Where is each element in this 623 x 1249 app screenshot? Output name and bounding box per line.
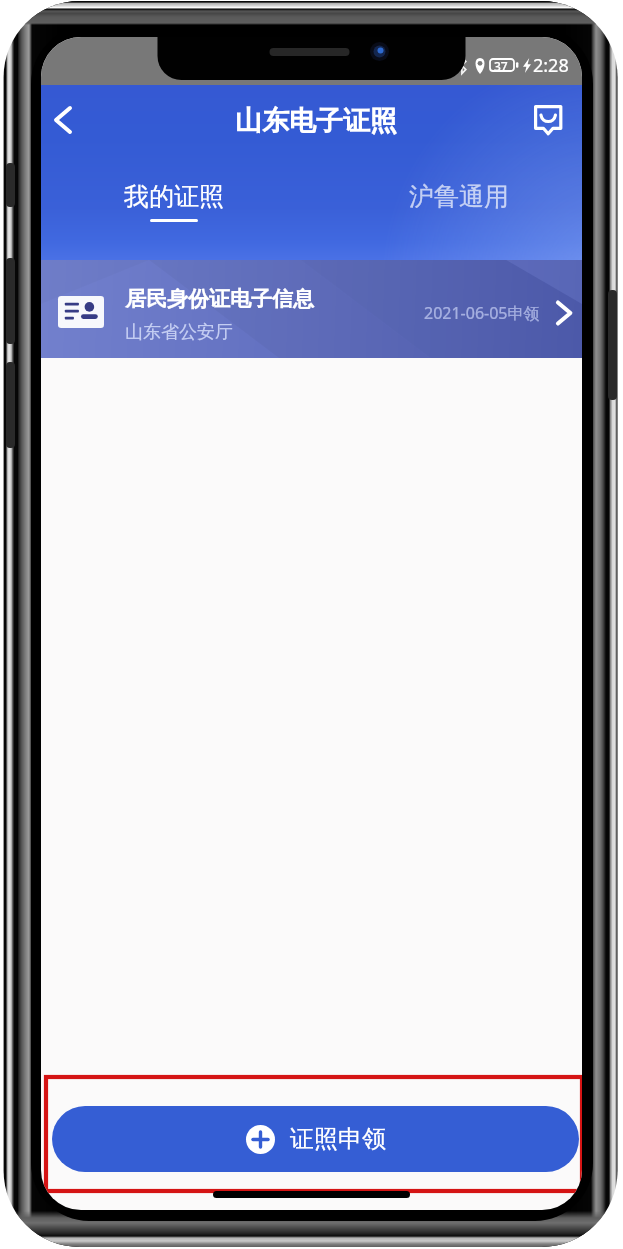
staticText: 山东省公安厅 — [125, 321, 233, 344]
staticText: 37 — [494, 58, 508, 74]
staticText: 2021-06-05申领 — [424, 302, 540, 324]
button[interactable]: 证照申领 — [52, 1106, 579, 1172]
button[interactable]: Back — [41, 94, 89, 146]
staticText: 2:28 — [533, 53, 569, 78]
button[interactable]: 居民身份证电子信息 — [41, 260, 582, 358]
staticText: 山东电子证照 — [235, 104, 397, 138]
button[interactable]: 沪鲁通用 — [391, 174, 527, 219]
staticText: 我的证照 — [124, 181, 224, 212]
button[interactable]: 我的证照 — [106, 174, 242, 229]
staticText: 证照申领 — [290, 1124, 386, 1154]
button[interactable]: Customer service — [524, 95, 572, 143]
staticText: 居民身份证电子信息 — [125, 286, 314, 312]
staticText: 沪鲁通用 — [409, 181, 509, 212]
